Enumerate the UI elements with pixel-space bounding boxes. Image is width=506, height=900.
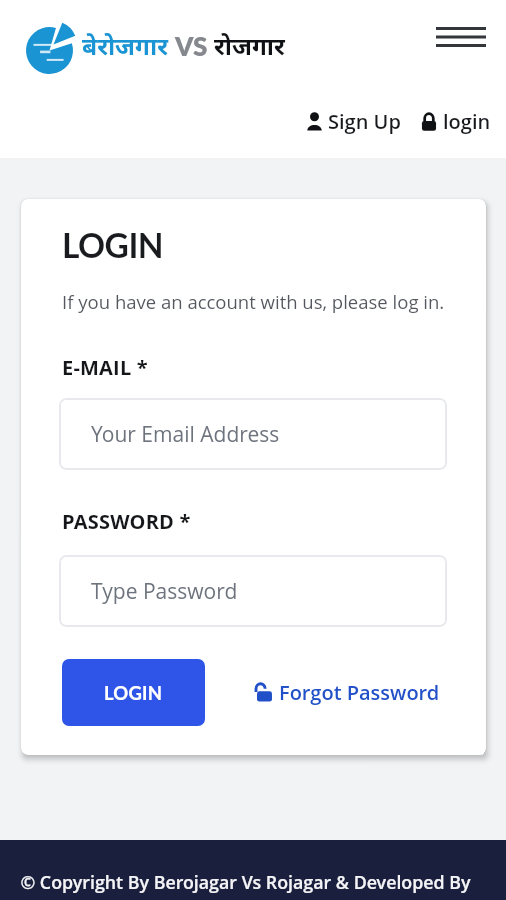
staticText: E-MAIL * [62, 354, 148, 381]
staticText: VS [175, 30, 208, 61]
button[interactable]: LOGIN [62, 659, 205, 726]
button[interactable]: login [419, 106, 493, 137]
staticText: login [443, 108, 491, 135]
staticText: LOGIN [62, 225, 164, 265]
staticText: Your Email Address [91, 420, 280, 449]
staticText: PASSWORD * [62, 508, 191, 535]
button[interactable]: Your Email Address [59, 398, 447, 470]
staticText: Type Password [91, 577, 238, 606]
staticText: रोजगार [214, 29, 285, 62]
staticText: If you have an account with us, please l… [62, 289, 445, 314]
button[interactable]: Type Password [59, 555, 447, 627]
staticText: © Copyright By Berojagar Vs Rojagar & De… [20, 870, 471, 894]
staticText: Sign Up [328, 108, 401, 135]
button[interactable] [428, 17, 494, 57]
button[interactable]: Forgot Password [254, 677, 442, 708]
button[interactable]: Sign Up [305, 106, 403, 137]
staticText: LOGIN [104, 682, 163, 704]
staticText: बेरोजगार [82, 29, 168, 62]
staticText: Forgot Password [279, 679, 440, 706]
